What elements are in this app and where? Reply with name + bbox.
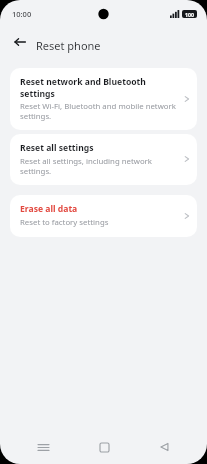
button[interactable]: Back (147, 430, 181, 464)
button[interactable]: Erase all data (10, 195, 197, 237)
staticText: Reset to factory settings (20, 217, 109, 228)
button[interactable]: Home (87, 430, 121, 464)
button[interactable]: Reset all settings (10, 134, 197, 185)
staticText: Reset all settings (20, 142, 94, 154)
staticText: Reset Wi-Fi, Bluetooth and mobile networ… (20, 101, 179, 121)
staticText: Erase all data (20, 203, 78, 215)
staticText: Reset phone (36, 38, 101, 53)
staticText: 100 (185, 11, 194, 18)
staticText: Reset all settings, including network se… (20, 156, 179, 176)
button[interactable]: Recent apps (26, 430, 60, 464)
staticText: Reset network and Bluetooth settings (20, 76, 179, 99)
staticText: 10:00 (12, 9, 32, 19)
button[interactable]: Back (7, 29, 33, 55)
button[interactable]: Reset network and Bluetooth settings (10, 68, 197, 130)
